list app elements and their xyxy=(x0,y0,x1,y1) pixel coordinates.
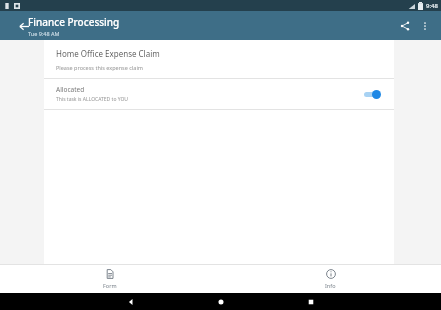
staticText: 9:48 xyxy=(426,2,438,10)
button[interactable]: Form xyxy=(0,265,220,293)
staticText: Allocated xyxy=(56,85,85,94)
button[interactable]: Recent apps xyxy=(266,293,356,310)
button[interactable]: Back xyxy=(86,293,176,310)
button[interactable]: Info xyxy=(220,265,441,293)
staticText: Home Office Expense Claim xyxy=(56,48,160,59)
staticText: This task is ALLOCATED to YOU xyxy=(56,96,128,103)
staticText: Please process this expense claim xyxy=(56,64,143,71)
button[interactable]: Back xyxy=(14,16,34,36)
staticText: Form xyxy=(103,282,117,289)
staticText: Tue 9:48 AM xyxy=(28,30,60,37)
button[interactable]: Allocated toggle xyxy=(362,87,384,101)
button[interactable]: Home xyxy=(176,293,266,310)
button[interactable]: Allocated xyxy=(44,79,394,109)
button[interactable]: Share xyxy=(395,16,415,36)
button[interactable]: More options xyxy=(415,16,435,36)
staticText: Info xyxy=(325,282,336,289)
staticText: Finance Processing xyxy=(28,15,120,29)
